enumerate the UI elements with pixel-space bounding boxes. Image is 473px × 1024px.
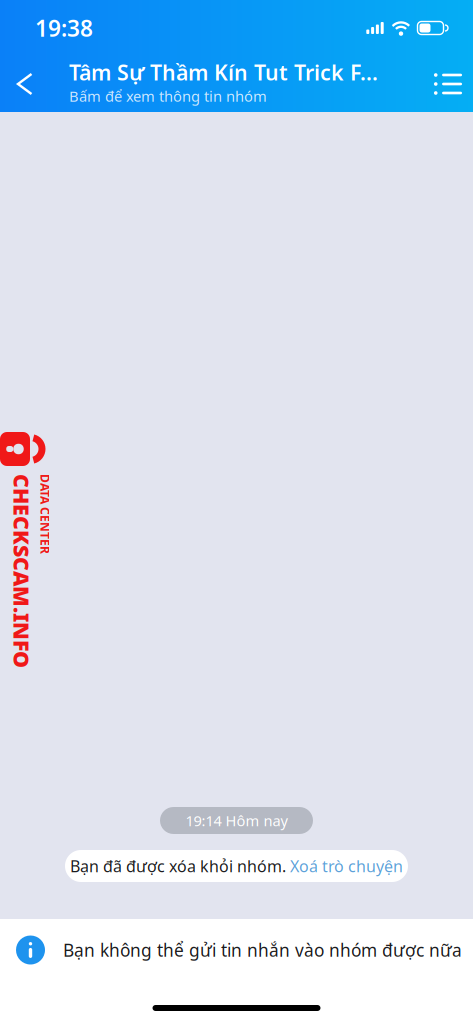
staticText: 19:14 Hôm nay [185, 811, 287, 830]
button[interactable]: Group options [424, 58, 473, 110]
button[interactable]: Back [0, 58, 69, 110]
staticText: Xoá trò chuyện [290, 855, 403, 877]
button[interactable]: Bạn đã được xóa khỏi nhóm. [65, 850, 408, 882]
staticText: Tâm Sự Thầm Kín Tut Trick F... [69, 58, 378, 86]
staticText: Bạn đã được xóa khỏi nhóm. [70, 855, 290, 877]
staticText: CHECKSCAM.INFO [0, 634, 54, 662]
staticText: 19:38 [35, 13, 93, 43]
staticText: Bạn không thể gửi tin nhắn vào nhóm được… [63, 938, 462, 961]
staticText: Bấm để xem thông tin nhóm [69, 86, 267, 106]
